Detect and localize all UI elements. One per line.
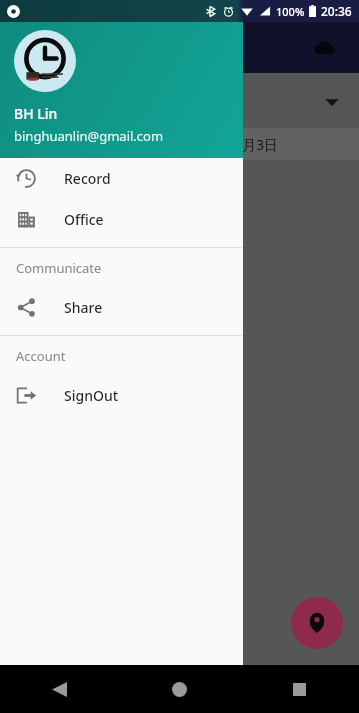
button[interactable]: Location: [291, 597, 343, 649]
staticText: 100%: [276, 4, 305, 19]
button[interactable]: SignOut: [0, 375, 243, 416]
staticText: Record: [64, 169, 111, 188]
staticText: 20:36: [321, 3, 352, 19]
staticText: Office: [64, 210, 104, 229]
staticText: 2017年12月3日: [180, 135, 279, 154]
button[interactable]: Upload to cloud: [307, 31, 341, 65]
button[interactable]: Home: [119, 665, 239, 713]
staticText: Account: [16, 347, 66, 365]
button[interactable]: Back: [0, 665, 119, 713]
staticText: Communicate: [16, 259, 102, 277]
staticText: BH Lin: [14, 104, 58, 123]
button[interactable]: Office: [0, 199, 243, 240]
button[interactable]: Share: [0, 287, 243, 328]
button[interactable]: Record: [0, 158, 243, 199]
staticText: SignOut: [64, 386, 119, 405]
button[interactable]: Recent apps: [239, 665, 359, 713]
staticText: Share: [64, 298, 103, 317]
button[interactable]: Profile photo: [14, 30, 76, 92]
staticText: binghuanlin@gmail.com: [14, 127, 164, 145]
